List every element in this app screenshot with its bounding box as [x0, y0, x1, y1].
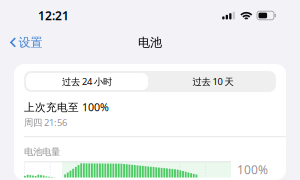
button[interactable]: 过去 24 小时: [24, 71, 150, 92]
staticText: 上次充电至 100%: [24, 100, 109, 114]
button[interactable]: 设置: [0, 32, 42, 53]
staticText: 周四 21:56: [24, 116, 67, 129]
staticText: 电池: [138, 35, 162, 50]
staticText: 过去 10 天: [192, 75, 233, 88]
staticText: 设置: [18, 35, 42, 50]
staticText: 100%: [237, 161, 268, 177]
button[interactable]: 过去 10 天: [150, 71, 276, 92]
staticText: 12:21: [38, 7, 69, 23]
staticText: 电池电量: [24, 146, 60, 158]
staticText: 过去 24 小时: [62, 75, 112, 88]
